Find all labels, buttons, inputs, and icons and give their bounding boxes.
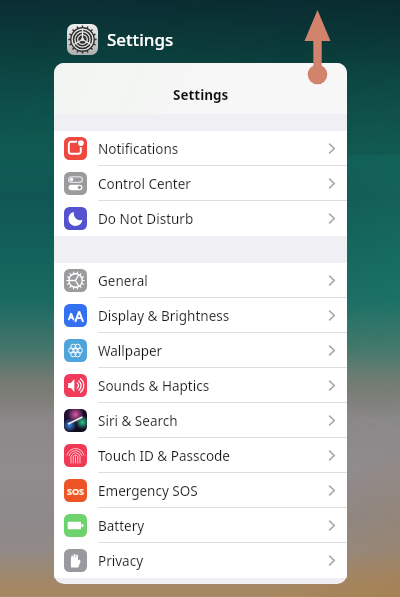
button[interactable]: Siri & Search [54,403,347,438]
staticText: Display & Brightness [98,307,230,325]
button[interactable]: Battery [54,508,347,543]
button[interactable]: Notifications [54,131,347,166]
staticText: Wallpaper [98,342,163,360]
staticText: Touch ID & Passcode [98,447,230,465]
staticText: Do Not Disturb [98,210,194,228]
staticText: General [98,272,148,290]
staticText: Privacy [98,552,144,570]
staticText: Settings [173,86,229,104]
button[interactable]: SOS [54,473,347,508]
staticText: Control Center [98,175,191,193]
button[interactable]: Sounds & Haptics [54,368,347,403]
button[interactable]: Display & Brightness [54,298,347,333]
staticText: Settings [107,28,174,51]
staticText: Battery [98,517,145,535]
staticText: Sounds & Haptics [98,377,210,395]
staticText: Emergency SOS [98,482,198,500]
button[interactable]: Privacy [54,543,347,578]
button[interactable]: General [54,263,347,298]
staticText: Siri & Search [98,412,178,430]
button[interactable]: Do Not Disturb [54,201,347,236]
button[interactable]: Wallpaper [54,333,347,368]
button[interactable]: Touch ID & Passcode [54,438,347,473]
other: Swipe up [0,0,400,597]
staticText: SOS [67,485,85,497]
button[interactable]: Control Center [54,166,347,201]
staticText: Notifications [98,140,179,158]
